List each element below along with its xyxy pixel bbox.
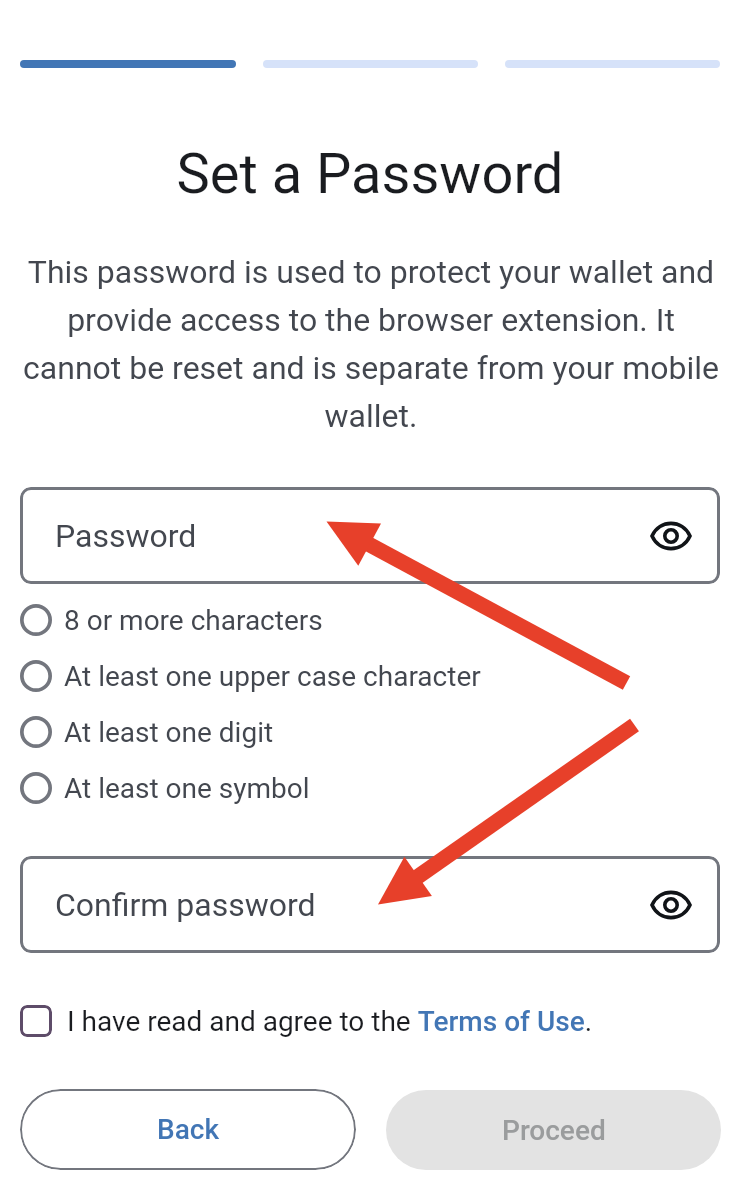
button[interactable]: Confirm password (20, 856, 720, 953)
button[interactable]: At least one upper case character (20, 648, 748, 704)
staticText: Confirm password (55, 886, 316, 924)
staticText: I have read and agree to the Terms of Us… (67, 1005, 593, 1038)
staticText: At least one symbol (64, 772, 310, 805)
button[interactable]: Proceed (386, 1090, 721, 1170)
staticText: At least one upper case character (64, 660, 481, 693)
button[interactable]: At least one digit (20, 704, 748, 760)
button[interactable]: 8 or more characters (20, 592, 748, 648)
staticText: Back (157, 1113, 220, 1146)
button[interactable]: Password (20, 487, 720, 584)
button[interactable]: At least one symbol (20, 760, 748, 816)
staticText: This password is used to protect your wa… (21, 253, 721, 434)
button[interactable]: Back (20, 1089, 356, 1170)
staticText: At least one digit (64, 716, 274, 749)
staticText: Proceed (502, 1114, 606, 1147)
button[interactable]: Agree to Terms of Use (20, 1005, 52, 1037)
button[interactable]: Show password (644, 509, 698, 563)
staticText: 8 or more characters (64, 604, 323, 637)
staticText: Set a Password (20, 141, 720, 207)
staticText: Password (55, 517, 197, 555)
button[interactable]: Show password (644, 878, 698, 932)
